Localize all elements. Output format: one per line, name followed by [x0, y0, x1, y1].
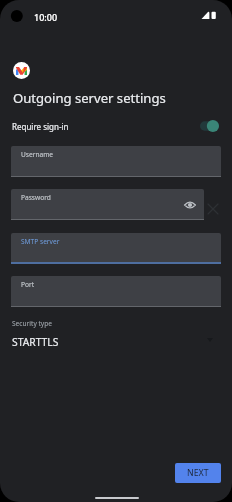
button[interactable]: Require sign-in: [0, 115, 232, 137]
button[interactable]: STARTTLS: [0, 334, 232, 350]
staticText: Password: [21, 193, 51, 202]
button[interactable]: NEXT: [175, 463, 221, 483]
staticText: SMTP server: [21, 237, 60, 246]
staticText: Require sign-in: [12, 121, 69, 132]
staticText: Port: [21, 280, 35, 289]
staticText: 10:00: [34, 11, 58, 23]
button[interactable]: Username: [11, 146, 221, 177]
button[interactable]: Password: [11, 189, 204, 220]
staticText: Outgoing server settings: [13, 89, 166, 107]
staticText: Security type: [12, 319, 52, 328]
button[interactable]: Port: [11, 276, 221, 307]
button[interactable]: SMTP server: [11, 233, 221, 264]
button[interactable]: Show password: [184, 201, 196, 209]
button[interactable]: Clear password: [205, 201, 221, 217]
staticText: NEXT: [187, 467, 209, 479]
staticText: Username: [21, 150, 54, 159]
staticText: STARTTLS: [12, 335, 59, 349]
button[interactable]: Require sign-in: [200, 119, 219, 133]
